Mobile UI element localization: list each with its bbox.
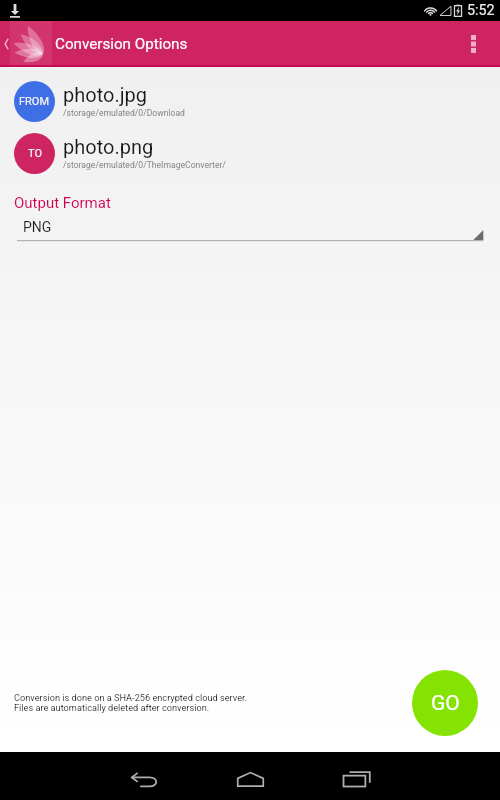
button[interactable]: TO xyxy=(0,125,500,177)
staticText: GO xyxy=(431,691,460,716)
staticText: photo.jpg xyxy=(63,83,147,106)
button[interactable]: GO xyxy=(412,670,478,736)
button[interactable]: More options xyxy=(450,21,500,67)
staticText: /storage/emulated/0/TheImageConverter/ xyxy=(63,160,226,170)
staticText: /storage/emulated/0/Download xyxy=(63,108,185,118)
button[interactable]: Back xyxy=(91,752,197,800)
button[interactable]: PNG xyxy=(0,223,500,255)
button[interactable]: FROM xyxy=(0,73,500,125)
staticText: 5:52 xyxy=(467,2,495,19)
staticText: FROM xyxy=(19,95,50,108)
staticText: Conversion Options xyxy=(55,35,188,53)
button[interactable]: Home xyxy=(197,752,303,800)
staticText: Output Format xyxy=(14,194,111,212)
staticText: TO xyxy=(28,147,42,160)
staticText: PNG xyxy=(23,219,52,235)
button[interactable]: App logo xyxy=(11,21,47,67)
staticText: Files are automatically deleted after co… xyxy=(14,702,210,713)
button[interactable]: Recent apps xyxy=(303,752,409,800)
staticText: Conversion is done on a SHA-256 encrypte… xyxy=(14,692,248,703)
staticText: photo.png xyxy=(63,135,154,158)
button[interactable]: Navigate up xyxy=(0,21,11,67)
